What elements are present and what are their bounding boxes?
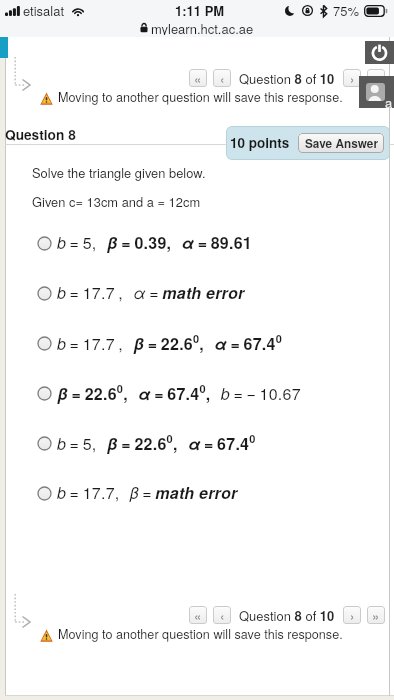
button[interactable]: b = 17.7 , α = math error (0, 270, 394, 314)
staticText: b = 17.7, β = math error (57, 481, 238, 504)
button[interactable]: b = 17.7, β = math error (0, 470, 394, 514)
button[interactable]: Previous question (213, 69, 231, 87)
staticText: 10 points (230, 133, 290, 152)
button[interactable]: b = 5, β = 22.60, α = 67.40 (0, 420, 394, 464)
button[interactable]: Account (359, 76, 394, 108)
button[interactable]: b = 5, β = 0.39, α = 89.61 (0, 220, 394, 264)
staticText: Moving to another question will save thi… (58, 624, 343, 642)
staticText: « (194, 606, 202, 624)
button[interactable]: First question (189, 606, 207, 624)
staticText: Save Answer (305, 135, 378, 152)
staticText: mylearn.hct.ac.ae (151, 19, 254, 35)
button[interactable]: Last question (367, 69, 385, 87)
staticText: Given c= 13cm and a = 12cm (32, 192, 201, 210)
button[interactable]: b = 17.7 , β = 22.60, α = 67.40 (0, 320, 394, 364)
staticText: 75% (333, 1, 360, 20)
staticText: › (350, 606, 355, 624)
button[interactable]: Previous question (213, 606, 231, 624)
staticText: Question 8 of 10 (239, 606, 335, 624)
staticText: › (350, 69, 355, 87)
staticText: 1:11 PM (175, 1, 225, 20)
staticText: Moving to another question will save thi… (58, 87, 343, 105)
staticText: ‹ (220, 606, 225, 624)
button[interactable]: β = 22.60, α = 67.40, b = − 10.67 (0, 370, 394, 414)
button[interactable]: First question (189, 69, 207, 87)
staticText: etisalat (23, 1, 65, 20)
button[interactable]: Last question (367, 606, 385, 624)
staticText: b = 5, β = 22.60, α = 67.40 (57, 431, 256, 454)
staticText: b = 17.7 , β = 22.60, α = 67.40 (57, 331, 283, 354)
staticText: a (385, 93, 393, 112)
button[interactable]: Next question (343, 69, 361, 87)
button[interactable]: Save Answer (298, 133, 384, 153)
button[interactable]: Next question (343, 606, 361, 624)
button[interactable]: Power (365, 41, 394, 64)
staticText: Solve the triangle given below. (32, 163, 206, 181)
staticText: ‹ (220, 69, 225, 87)
staticText: Question 8 (5, 125, 76, 145)
staticText: « (194, 69, 202, 87)
staticText: b = 5, β = 0.39, α = 89.61 (57, 231, 253, 254)
staticText: » (372, 69, 380, 87)
staticText: Question 8 of 10 (239, 69, 335, 87)
staticText: b = 17.7 , α = math error (57, 281, 245, 304)
staticText: β = 22.60, α = 67.40, b = − 10.67 (57, 381, 301, 404)
staticText: » (372, 606, 380, 624)
